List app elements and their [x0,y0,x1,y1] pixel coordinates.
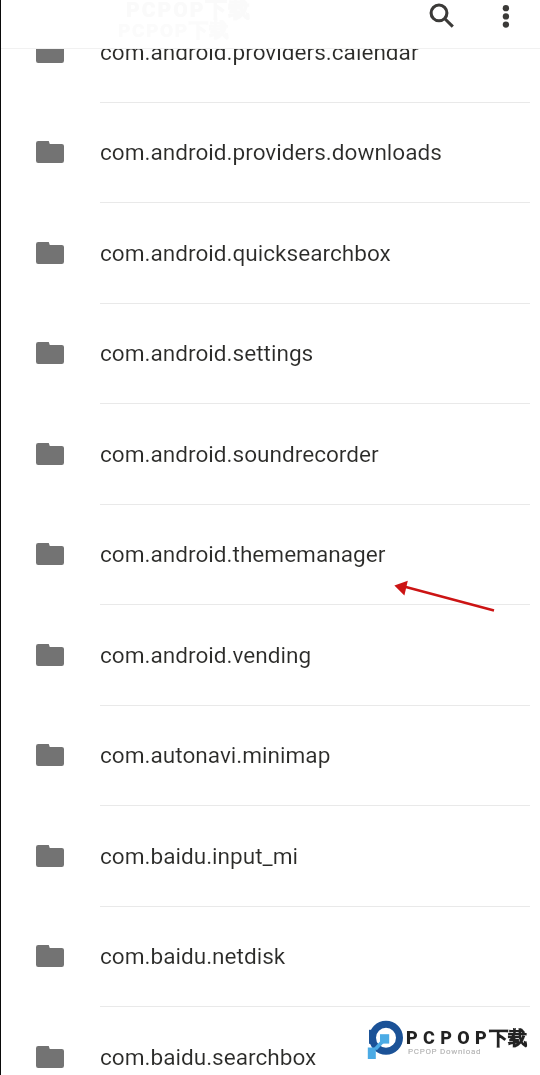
staticText: com.autonavi.minimap [100,742,331,768]
staticText: com.android.providers.calendar [100,39,419,65]
button[interactable]: com.baidu.netdisk [0,906,540,1007]
staticText: 下载 [489,1027,527,1051]
staticText: com.android.quicksearchbox [100,240,391,266]
button[interactable]: com.baidu.searchbox [0,1007,540,1075]
staticText: com.android.vending [100,642,312,668]
staticText: com.baidu.searchbox [100,1044,317,1070]
staticText: com.android.providers.downloads [100,139,442,165]
button[interactable]: com.android.soundrecorder [0,404,540,505]
staticText: com.android.thememanager [100,541,386,567]
button[interactable]: More options [483,0,529,46]
staticText: com.android.soundrecorder [100,441,379,467]
button[interactable]: com.android.vending [0,605,540,706]
button[interactable]: com.android.providers.calendar [0,2,540,103]
staticText: PCPOP [406,1027,492,1048]
staticText: com.android.settings [100,340,314,366]
staticText: PCPOP Download [408,1047,482,1056]
button[interactable]: com.baidu.input_mi [0,806,540,907]
button[interactable]: com.android.settings [0,303,540,404]
staticText: com.baidu.netdisk [100,943,286,969]
staticText: com.baidu.input_mi [100,843,299,869]
button[interactable]: com.android.thememanager [0,504,540,605]
button[interactable]: com.android.providers.downloads [0,102,540,203]
button[interactable]: com.android.quicksearchbox [0,203,540,304]
button[interactable]: Search [417,0,463,46]
button[interactable]: com.autonavi.minimap [0,705,540,806]
